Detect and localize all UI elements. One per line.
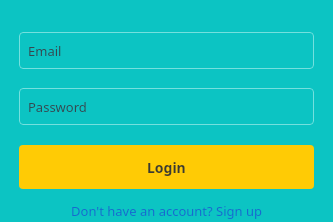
- staticText: Don't have an account? Sign up: [71, 202, 262, 220]
- button[interactable]: Login: [19, 145, 314, 189]
- staticText: Login: [147, 158, 186, 177]
- button[interactable]: Don't have an account? Sign up: [0, 200, 333, 222]
- staticText: Password: [28, 98, 87, 116]
- staticText: Email: [28, 42, 62, 60]
- button[interactable]: Email: [19, 32, 314, 69]
- button[interactable]: Password: [19, 88, 314, 125]
